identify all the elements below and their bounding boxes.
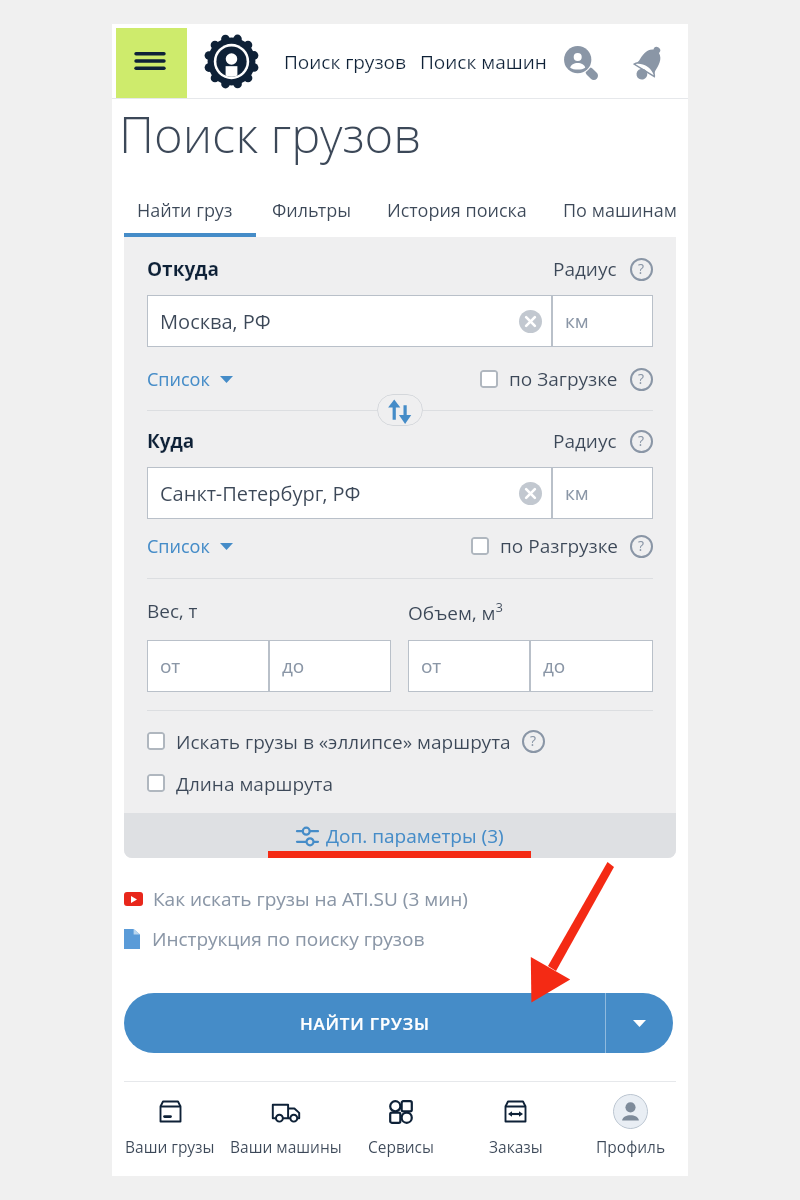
- staticText: Список: [147, 534, 210, 559]
- staticText: ?: [638, 369, 645, 388]
- button[interactable]: Москва, РФ: [160, 295, 542, 347]
- button[interactable]: Список: [147, 367, 233, 392]
- button[interactable]: Find contacts: [558, 40, 602, 84]
- button[interactable]: Длина маршрута: [147, 771, 333, 795]
- button[interactable]: Help: [630, 430, 653, 453]
- button[interactable]: Сервисы: [343, 1082, 458, 1177]
- staticText: Москва, РФ: [160, 308, 271, 335]
- button[interactable]: Notifications: [627, 40, 671, 84]
- button[interactable]: до: [282, 640, 378, 692]
- button[interactable]: Заказы: [458, 1082, 573, 1177]
- button[interactable]: Swap directions: [377, 394, 423, 426]
- staticText: Откуда: [147, 256, 219, 282]
- button[interactable]: More search options: [606, 993, 673, 1053]
- staticText: Искать грузы в «эллипсе» маршрута: [176, 729, 511, 753]
- staticText: до: [543, 653, 566, 679]
- button[interactable]: История поиска: [387, 196, 527, 237]
- button[interactable]: Menu: [116, 28, 187, 98]
- staticText: Вес, т: [147, 598, 198, 624]
- button[interactable]: Поиск машин: [420, 49, 547, 75]
- staticText: Доп. параметры (3): [326, 823, 504, 849]
- staticText: НАЙТИ ГРУЗЫ: [300, 1012, 430, 1035]
- staticText: Объем, м3: [408, 598, 503, 625]
- button[interactable]: Найти груз: [137, 196, 233, 237]
- staticText: Санкт-Петербург, РФ: [160, 480, 361, 507]
- staticText: по Разгрузке: [500, 533, 618, 559]
- staticText: Куда: [147, 428, 195, 454]
- button[interactable]: Clear: [519, 310, 542, 333]
- staticText: Ваши грузы: [125, 1136, 215, 1157]
- button[interactable]: км: [565, 467, 640, 519]
- button[interactable]: от: [160, 640, 256, 692]
- staticText: от: [421, 653, 442, 679]
- button[interactable]: по Разгрузке: [471, 533, 618, 559]
- button[interactable]: По машинам: [563, 196, 677, 237]
- staticText: от: [160, 653, 181, 679]
- button[interactable]: Ваши грузы: [112, 1082, 228, 1177]
- staticText: Ваши машины: [230, 1136, 342, 1157]
- staticText: Радиус: [553, 256, 617, 282]
- button[interactable]: Поиск грузов: [284, 49, 406, 75]
- button[interactable]: по Загрузке: [480, 366, 618, 392]
- button[interactable]: Help: [630, 368, 653, 391]
- staticText: до: [282, 653, 305, 679]
- button[interactable]: НАЙТИ ГРУЗЫ: [124, 993, 605, 1053]
- button[interactable]: от: [421, 640, 517, 692]
- button[interactable]: Clear: [519, 482, 542, 505]
- staticText: Заказы: [489, 1136, 543, 1157]
- button[interactable]: км: [565, 295, 640, 347]
- staticText: по Загрузке: [509, 366, 618, 392]
- staticText: Список: [147, 367, 210, 392]
- button[interactable]: Фильтры: [272, 196, 352, 237]
- staticText: Сервисы: [368, 1136, 434, 1157]
- button[interactable]: Искать грузы в «эллипсе» маршрута: [147, 729, 545, 753]
- staticText: ?: [530, 731, 537, 750]
- button[interactable]: Список: [147, 534, 233, 559]
- staticText: История поиска: [387, 198, 527, 223]
- button[interactable]: Санкт-Петербург, РФ: [160, 467, 542, 519]
- staticText: км: [565, 480, 589, 506]
- button[interactable]: Доп. параметры (3): [124, 813, 676, 858]
- staticText: Поиск грузов: [119, 101, 421, 168]
- button[interactable]: Help: [630, 535, 653, 558]
- staticText: км: [565, 308, 589, 334]
- staticText: Как искать грузы на ATI.SU (3 мин): [153, 886, 468, 912]
- staticText: ?: [638, 259, 645, 278]
- button[interactable]: Help: [630, 258, 653, 281]
- staticText: Радиус: [553, 428, 617, 454]
- button[interactable]: Ваши машины: [228, 1082, 343, 1177]
- button[interactable]: Инструкция по поиску грузов: [124, 919, 425, 959]
- staticText: Фильтры: [272, 198, 352, 223]
- staticText: Профиль: [596, 1136, 666, 1157]
- button[interactable]: до: [543, 640, 640, 692]
- staticText: Длина маршрута: [176, 771, 333, 795]
- staticText: Инструкция по поиску грузов: [152, 926, 425, 952]
- button[interactable]: Профиль: [573, 1082, 688, 1177]
- staticText: ?: [638, 536, 645, 555]
- staticText: ?: [638, 431, 645, 450]
- button[interactable]: Help: [522, 730, 545, 753]
- staticText: Найти груз: [137, 198, 233, 223]
- staticText: По машинам: [563, 198, 677, 223]
- button[interactable]: Как искать грузы на ATI.SU (3 мин): [124, 879, 468, 919]
